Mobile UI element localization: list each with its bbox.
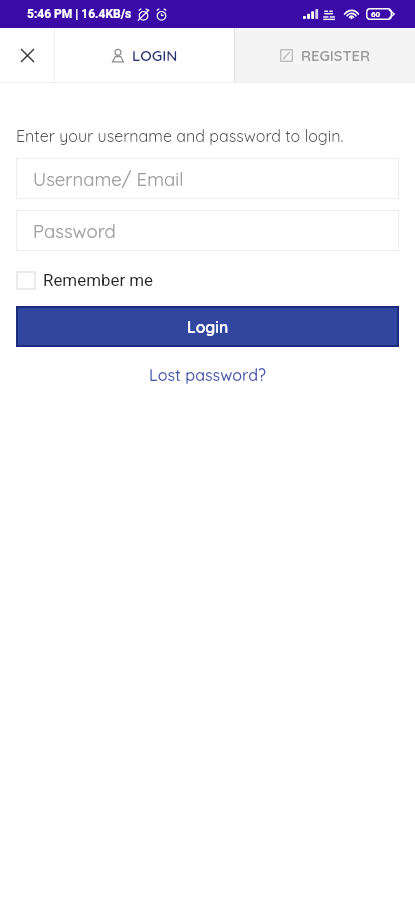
staticText: 5:46 PM | 16.4KB/s	[27, 7, 132, 21]
staticText: REGISTER	[301, 46, 371, 65]
button[interactable]: Username/ Email	[16, 158, 399, 199]
staticText: Username/ Email	[33, 167, 184, 190]
staticText: Remember me	[43, 270, 154, 290]
button[interactable]: Login	[16, 306, 399, 347]
staticText: Enter your username and password to logi…	[16, 126, 344, 146]
staticText: LOGIN	[132, 46, 178, 65]
staticText: Password	[33, 219, 116, 242]
button[interactable]: LOGIN	[55, 28, 234, 82]
staticText: 60	[371, 10, 381, 19]
button[interactable]: Password	[16, 210, 399, 251]
button[interactable]: Close	[0, 28, 54, 82]
button[interactable]: Remember me	[16, 270, 154, 290]
button[interactable]: REGISTER	[235, 28, 415, 82]
button[interactable]: Lost password?	[0, 365, 415, 385]
staticText: Login	[187, 317, 229, 337]
